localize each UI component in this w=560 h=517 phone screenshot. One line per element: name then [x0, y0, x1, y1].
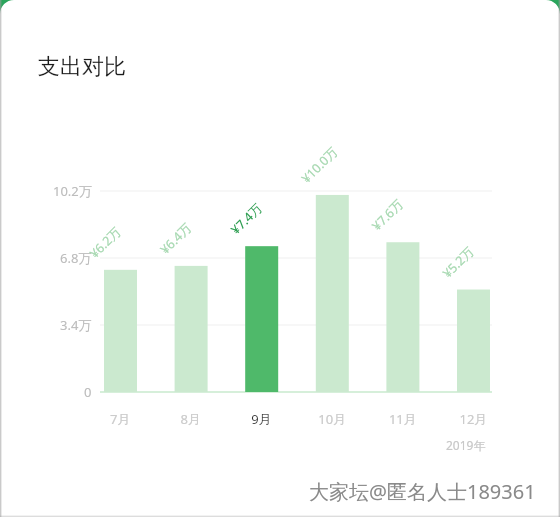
button[interactable]: Expense comparison chart: [0, 0, 560, 517]
